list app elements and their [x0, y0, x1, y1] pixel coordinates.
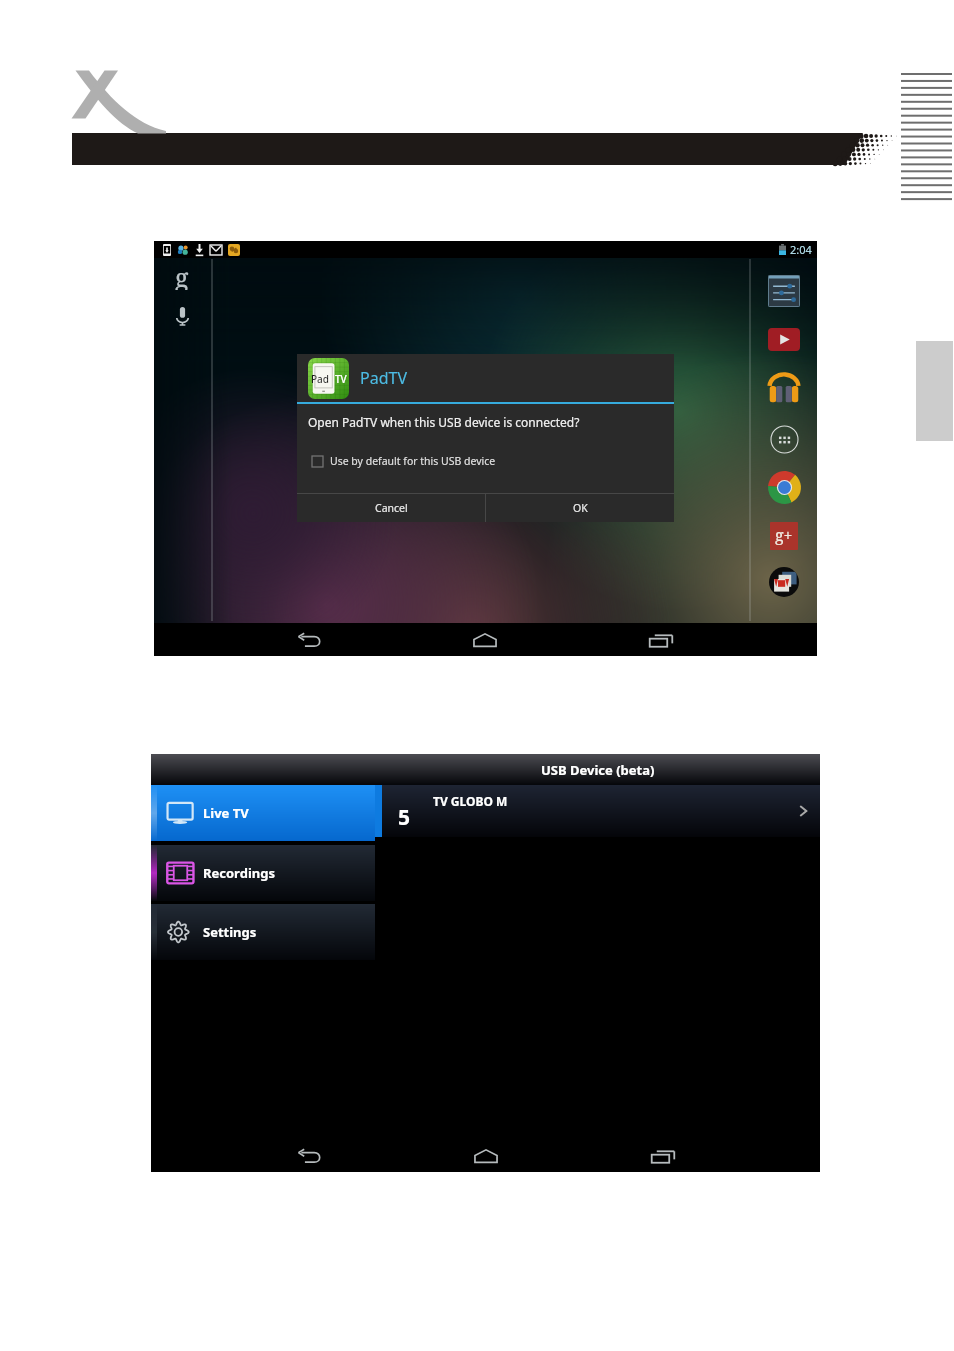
staticText: Settings: [203, 923, 257, 941]
staticText: USB Device (beta): [541, 761, 655, 779]
staticText: PadTV: [360, 367, 407, 389]
button[interactable]: Home: [465, 624, 505, 656]
button[interactable]: Use by default for this USB device: [312, 454, 496, 468]
button[interactable]: Cancel: [297, 494, 485, 522]
staticText: g: [175, 260, 189, 290]
staticText: 5: [398, 803, 411, 832]
button[interactable]: Recents: [643, 1140, 683, 1172]
staticText: Use by default for this USB device: [330, 454, 496, 468]
staticText: Pad: [311, 372, 330, 386]
button[interactable]: Back: [289, 1140, 329, 1172]
button[interactable]: Chrome: [768, 471, 801, 504]
staticText: g+: [775, 524, 793, 546]
button[interactable]: Recordings: [151, 845, 375, 901]
button[interactable]: Voice search: [176, 307, 189, 325]
button[interactable]: Gmail: [769, 567, 799, 597]
staticText: 2:04: [790, 242, 812, 257]
button[interactable]: Settings: [151, 904, 375, 960]
button[interactable]: OK: [486, 494, 674, 522]
button[interactable]: Live TV: [151, 785, 375, 841]
button[interactable]: Home: [466, 1140, 506, 1172]
button[interactable]: Play Music: [767, 371, 801, 405]
staticText: Live TV: [203, 804, 249, 822]
button[interactable]: 5: [375, 785, 820, 837]
button[interactable]: Settings: [768, 275, 800, 307]
button[interactable]: Google Plus: [770, 522, 798, 550]
button[interactable]: Google search: [175, 260, 191, 290]
staticText: Cancel: [375, 501, 408, 515]
button[interactable]: Recents: [641, 624, 681, 656]
staticText: Recordings: [203, 864, 275, 882]
button[interactable]: Apps: [770, 425, 799, 454]
button[interactable]: YouTube: [768, 328, 800, 351]
staticText: TV: [335, 372, 347, 386]
staticText: OK: [573, 501, 588, 515]
staticText: Open PadTV when this USB device is conne…: [308, 414, 580, 430]
button[interactable]: Back: [289, 624, 329, 656]
staticText: TV GLOBO M: [433, 793, 508, 809]
